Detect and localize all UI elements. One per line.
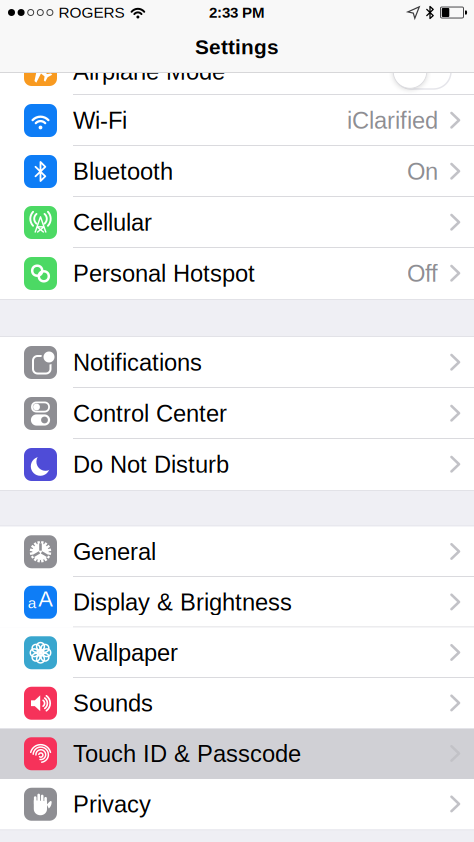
- staticText: Bluetooth: [73, 158, 173, 185]
- staticText: On: [407, 158, 438, 185]
- button[interactable]: Wallpaper: [0, 627, 474, 678]
- staticText: ROGERS: [58, 4, 124, 21]
- button[interactable]: Airplane Mode: [393, 53, 452, 90]
- staticText: General: [73, 538, 156, 565]
- staticText: Wallpaper: [73, 639, 178, 666]
- staticText: Touch ID & Passcode: [73, 740, 301, 767]
- button[interactable]: Do Not Disturb: [0, 439, 474, 490]
- staticText: Off: [407, 260, 438, 287]
- button[interactable]: Sounds: [0, 678, 474, 728]
- button[interactable]: General: [0, 526, 474, 577]
- button[interactable]: Notifications: [0, 337, 474, 388]
- staticText: Settings: [195, 35, 279, 59]
- button[interactable]: Bluetooth: [0, 146, 474, 197]
- staticText: Sounds: [73, 690, 153, 716]
- staticText: Wi-Fi: [73, 107, 127, 134]
- button[interactable]: a: [0, 577, 474, 627]
- staticText: Personal Hotspot: [73, 260, 255, 287]
- staticText: Do Not Disturb: [73, 451, 229, 478]
- staticText: Notifications: [73, 349, 202, 376]
- staticText: Privacy: [73, 791, 151, 817]
- button[interactable]: Personal Hotspot: [0, 248, 474, 299]
- staticText: 2:33 PM: [209, 4, 265, 21]
- staticText: A: [38, 586, 53, 611]
- button[interactable]: Cellular: [0, 197, 474, 248]
- staticText: Airplane Mode: [73, 58, 225, 85]
- button[interactable]: Control Center: [0, 388, 474, 439]
- button[interactable]: Privacy: [0, 779, 474, 829]
- staticText: Cellular: [73, 209, 152, 236]
- staticText: Display & Brightness: [73, 589, 292, 615]
- staticText: Control Center: [73, 400, 227, 427]
- button[interactable]: Touch ID & Passcode: [0, 728, 474, 779]
- staticText: iClarified: [347, 107, 438, 134]
- staticText: a: [28, 594, 37, 611]
- button[interactable]: Wi-Fi: [0, 95, 474, 146]
